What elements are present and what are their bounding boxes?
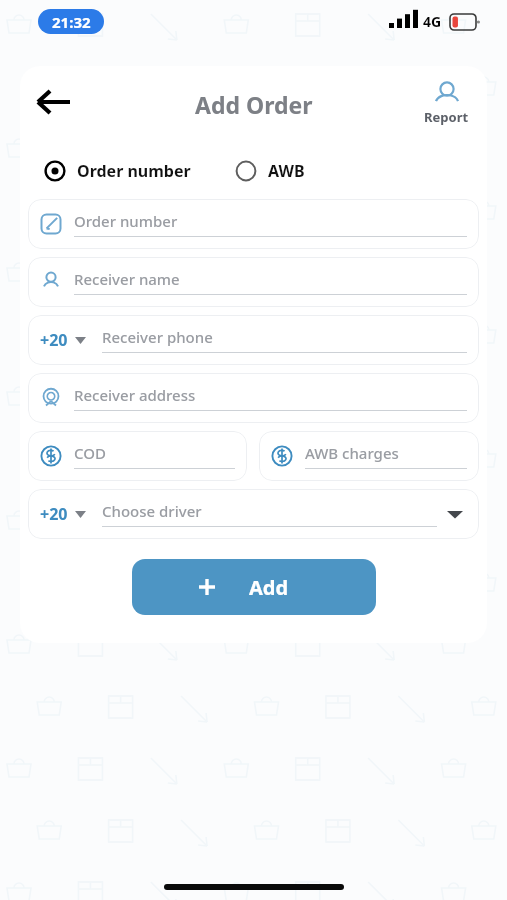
button[interactable]: Receiver name — [28, 257, 479, 307]
button[interactable]: +20 — [40, 325, 86, 355]
staticText: Choose driver — [102, 501, 202, 521]
staticText: +20 — [40, 329, 68, 351]
button[interactable]: +20 — [40, 499, 86, 529]
button[interactable]: AWB charges — [259, 431, 479, 481]
button[interactable]: +20 — [28, 489, 479, 539]
button[interactable]: Back — [26, 75, 80, 129]
staticText: 21:32 — [52, 12, 91, 32]
button[interactable]: Order number — [44, 156, 191, 186]
staticText: AWB charges — [305, 443, 399, 463]
staticText: Add Order — [195, 89, 313, 120]
staticText: Order number — [77, 160, 191, 182]
staticText: +20 — [40, 503, 68, 525]
button[interactable]: Report — [420, 78, 473, 130]
button[interactable]: +20 — [28, 315, 479, 365]
staticText: AWB — [268, 160, 305, 182]
button[interactable]: COD — [28, 431, 247, 481]
staticText: COD — [74, 443, 106, 463]
button[interactable]: Add — [132, 559, 376, 615]
staticText: Receiver phone — [102, 327, 213, 347]
button[interactable]: Order number — [28, 199, 479, 249]
button[interactable]: AWB — [235, 156, 305, 186]
staticText: Receiver name — [74, 269, 180, 289]
staticText: Receiver address — [74, 385, 196, 405]
staticText: Report — [424, 108, 469, 126]
staticText: 4G — [423, 12, 442, 31]
staticText: Order number — [74, 211, 178, 231]
staticText: Add — [249, 574, 289, 601]
button[interactable]: Receiver address — [28, 373, 479, 423]
